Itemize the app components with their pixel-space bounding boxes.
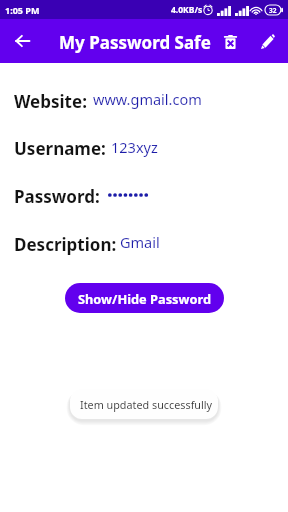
staticText: Item updated successfully (80, 397, 213, 412)
staticText: Description: (14, 233, 117, 256)
staticText: Username: (14, 137, 106, 160)
staticText: 4.0KB/s (171, 4, 203, 16)
staticText: 123xyz (111, 137, 158, 157)
staticText: Show/Hide Password (78, 290, 212, 307)
button[interactable]: Show/Hide Password (65, 283, 224, 313)
staticText: Gmail (120, 232, 160, 252)
staticText: Password: (14, 185, 100, 208)
button[interactable]: Navigate up (8, 27, 36, 55)
staticText: www.gmail.com (93, 89, 202, 109)
staticText: 32 (269, 6, 277, 15)
staticText: 1:05 PM (5, 4, 40, 16)
button[interactable]: Delete (215, 27, 245, 57)
staticText: My Password Safe (59, 31, 211, 54)
button[interactable]: Edit (253, 26, 283, 56)
staticText: Website: (14, 90, 87, 113)
